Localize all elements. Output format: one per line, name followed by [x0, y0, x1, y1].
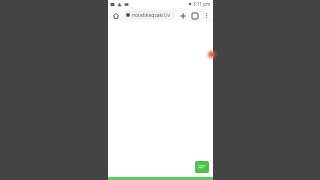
staticText: notebkeqzakil.ive: [132, 12, 172, 19]
button[interactable]: Tabs: [190, 11, 199, 20]
button[interactable]: notebkeqzakil.ive: [123, 10, 175, 20]
button[interactable]: New tab: [178, 11, 187, 20]
button[interactable]: Home: [111, 11, 120, 20]
button[interactable]: Chat: [195, 161, 209, 173]
staticText: 3:11 pm: [193, 1, 211, 7]
button[interactable]: More options: [202, 11, 210, 19]
